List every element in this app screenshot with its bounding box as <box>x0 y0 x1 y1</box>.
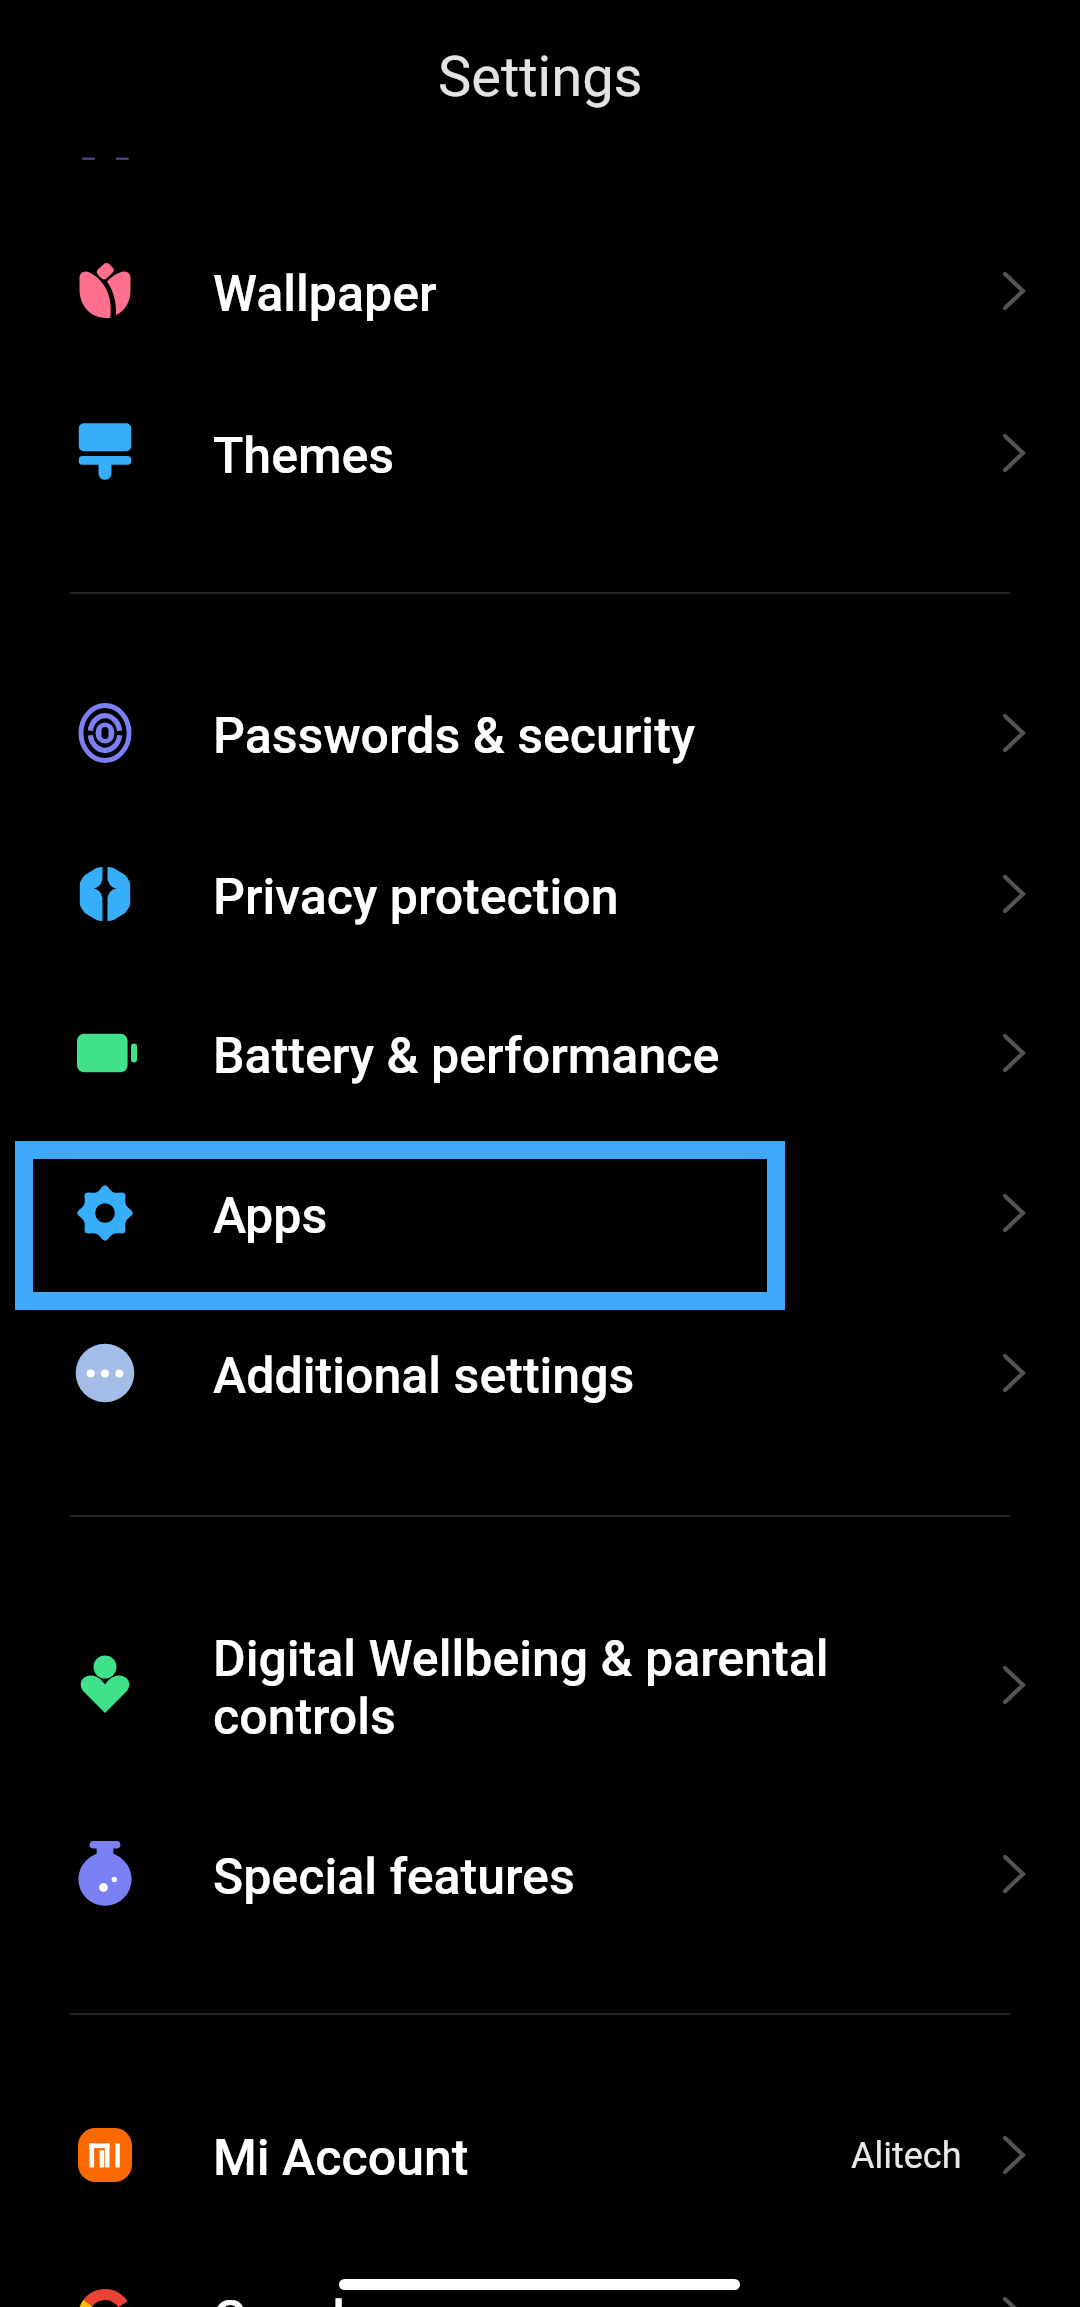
staticText: Settings <box>438 44 643 110</box>
staticText: Mi Account <box>213 2129 469 2188</box>
staticText: Additional settings <box>213 1347 635 1406</box>
other: Apps row selected <box>15 1141 785 1310</box>
button[interactable]: Google <box>0 2236 1080 2307</box>
button[interactable]: Apps <box>0 1133 1080 1293</box>
staticText: Privacy protection <box>213 868 619 927</box>
button[interactable]: Special features <box>0 1794 1080 1954</box>
staticText: Digital Wellbeing & parental controls <box>213 1630 829 1746</box>
button[interactable]: Additional settings <box>0 1293 1080 1453</box>
button[interactable]: Mi Account <box>0 2075 1080 2235</box>
button[interactable]: Digital Wellbeing & parental controls <box>0 1605 1080 1765</box>
staticText: Apps <box>213 1187 328 1246</box>
staticText: Passwords & security <box>213 707 696 766</box>
button[interactable]: Themes <box>0 373 1080 533</box>
staticText: Themes <box>213 427 395 486</box>
staticText: Special features <box>213 1848 575 1907</box>
button[interactable]: Wallpaper <box>0 211 1080 371</box>
button[interactable]: Battery & performance <box>0 973 1080 1133</box>
button[interactable]: Passwords & security <box>0 653 1080 813</box>
staticText: Google <box>213 2290 372 2307</box>
button[interactable]: Privacy protection <box>0 814 1080 974</box>
staticText: Wallpaper <box>213 265 437 324</box>
staticText: Battery & performance <box>213 1027 720 1086</box>
staticText: Alitech <box>851 2135 962 2177</box>
